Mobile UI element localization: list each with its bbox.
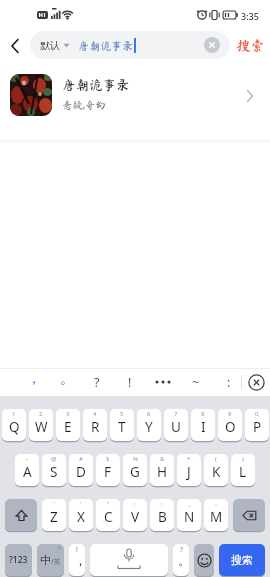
button[interactable]: 7 (164, 409, 188, 441)
staticText: 唐朝诡事录 (62, 78, 130, 92)
button[interactable]: ? (85, 368, 109, 396)
button[interactable]: & (150, 454, 174, 486)
button[interactable] (5, 499, 37, 531)
staticText: ) (242, 455, 244, 463)
button[interactable]: ' (69, 499, 93, 531)
staticText: K (212, 463, 221, 481)
button[interactable] (246, 372, 266, 392)
button[interactable]: ) (231, 454, 255, 486)
button[interactable]: : (217, 368, 241, 396)
staticText: ! (128, 374, 132, 391)
staticText: 搜索 (231, 553, 253, 567)
staticText: ? (94, 374, 100, 391)
button[interactable]: 0 (245, 409, 269, 441)
staticText: ; (134, 500, 136, 508)
staticText: O (225, 418, 236, 436)
staticText: 默认 (40, 39, 60, 52)
staticText: - (215, 500, 217, 508)
staticText: ' (80, 500, 82, 508)
button[interactable] (151, 368, 175, 396)
staticText: D (76, 463, 86, 481)
staticText: F (104, 463, 112, 481)
staticText: A (23, 463, 32, 481)
staticText: # (79, 455, 83, 463)
staticText: $ (106, 455, 110, 463)
button[interactable]: 6 (137, 409, 161, 441)
button[interactable] (233, 499, 265, 531)
staticText: 搜索 (236, 38, 265, 53)
staticText: E (64, 418, 72, 436)
button[interactable]: ; (123, 499, 147, 531)
button[interactable]: 3 (56, 409, 80, 441)
staticText: 悬疑,奇幻 (62, 100, 106, 110)
button[interactable]: 唐朝诡事录 (0, 70, 270, 142)
staticText: 6 (147, 410, 151, 418)
staticText: 0 (255, 410, 259, 418)
button[interactable]: : (150, 499, 174, 531)
staticText: 4 (93, 410, 97, 418)
button[interactable]: ( (204, 454, 228, 486)
button[interactable]: @ (42, 454, 66, 486)
button[interactable]: ! (69, 544, 85, 576)
staticText: ， (74, 552, 87, 568)
staticText: % (133, 455, 138, 463)
staticText: 。 (60, 370, 74, 388)
button[interactable]: # (69, 454, 93, 486)
button[interactable]: 4 (83, 409, 107, 441)
staticText: ~ (25, 455, 29, 463)
button[interactable]: 搜索 (236, 38, 265, 53)
staticText: ~ (192, 374, 200, 391)
button[interactable]: 2 (29, 409, 53, 441)
staticText: S (50, 463, 58, 481)
staticText: /英 (51, 557, 61, 567)
staticText: H (157, 463, 168, 481)
staticText: ! (76, 545, 78, 554)
button[interactable]: 1 (2, 409, 26, 441)
staticText: X (77, 508, 85, 526)
staticText: I (201, 418, 206, 436)
staticText: ( (215, 455, 217, 463)
staticText: U (171, 418, 181, 436)
button[interactable]: 5 (110, 409, 134, 441)
staticText: G (130, 463, 140, 481)
button[interactable] (4, 35, 26, 57)
button[interactable]: 8 (191, 409, 215, 441)
staticText: L (239, 463, 247, 481)
staticText: 唐朝诡事录 (78, 40, 133, 51)
staticText: 3:35 (241, 10, 259, 22)
staticText: 7 (174, 410, 178, 418)
staticText: @ (51, 455, 57, 463)
staticText: C (104, 508, 113, 526)
button[interactable]: - (204, 499, 228, 531)
button[interactable]: _ (177, 499, 201, 531)
button[interactable]: 中 (37, 544, 64, 576)
button[interactable]: * (177, 454, 201, 486)
staticText: N (184, 508, 195, 526)
button[interactable]: 。 (52, 368, 76, 396)
button[interactable]: " (96, 499, 120, 531)
staticText: 。 (178, 552, 191, 568)
button[interactable]: ， (19, 368, 43, 396)
button[interactable]: 9 (218, 409, 242, 441)
staticText: 1 (12, 410, 16, 418)
button[interactable] (90, 544, 168, 576)
button[interactable]: $ (96, 454, 120, 486)
button[interactable]: ? (173, 544, 189, 576)
button[interactable]: ?123 (5, 544, 32, 576)
button[interactable] (204, 37, 220, 53)
staticText: ， (27, 370, 41, 388)
staticText: Y (145, 418, 153, 436)
button[interactable]: ` (42, 499, 66, 531)
button[interactable]: 默认 (30, 31, 230, 59)
staticText: ? (180, 545, 183, 554)
button[interactable]: ! (118, 368, 142, 396)
staticText: B (158, 508, 167, 526)
staticText: 8 (201, 410, 205, 418)
button[interactable]: ~ (184, 368, 208, 396)
staticText: W (35, 418, 48, 436)
button[interactable] (194, 544, 214, 576)
button[interactable]: 搜索 (219, 544, 265, 576)
button[interactable]: ~ (15, 454, 39, 486)
button[interactable]: % (123, 454, 147, 486)
staticText: T (118, 418, 126, 436)
